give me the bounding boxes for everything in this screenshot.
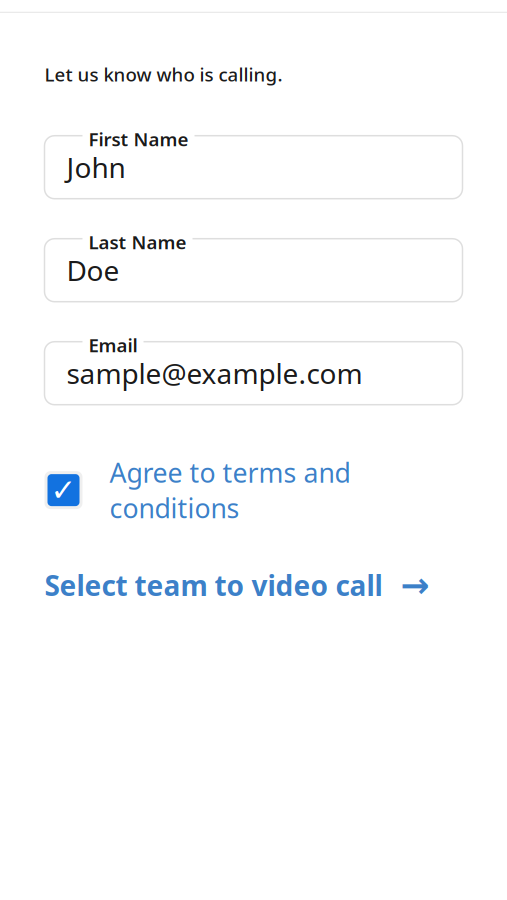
staticText: ‹ bbox=[16, 0, 35, 15]
staticText: Doe bbox=[66, 252, 119, 289]
staticText: First Name bbox=[88, 127, 188, 151]
staticText: John bbox=[66, 149, 125, 186]
button[interactable]: ✓ bbox=[44, 451, 350, 529]
button[interactable]: Select team to video call bbox=[44, 559, 429, 611]
staticText: sample@example.com bbox=[66, 355, 362, 392]
staticText: ✓ bbox=[50, 473, 76, 507]
staticText: Agree to terms and conditions bbox=[109, 455, 350, 525]
staticText: Email bbox=[88, 333, 137, 357]
staticText: Select team to video call bbox=[44, 567, 382, 604]
staticText: → bbox=[400, 565, 429, 605]
staticText: Let us know who is calling. bbox=[44, 62, 282, 87]
staticText: Last Name bbox=[88, 230, 186, 254]
